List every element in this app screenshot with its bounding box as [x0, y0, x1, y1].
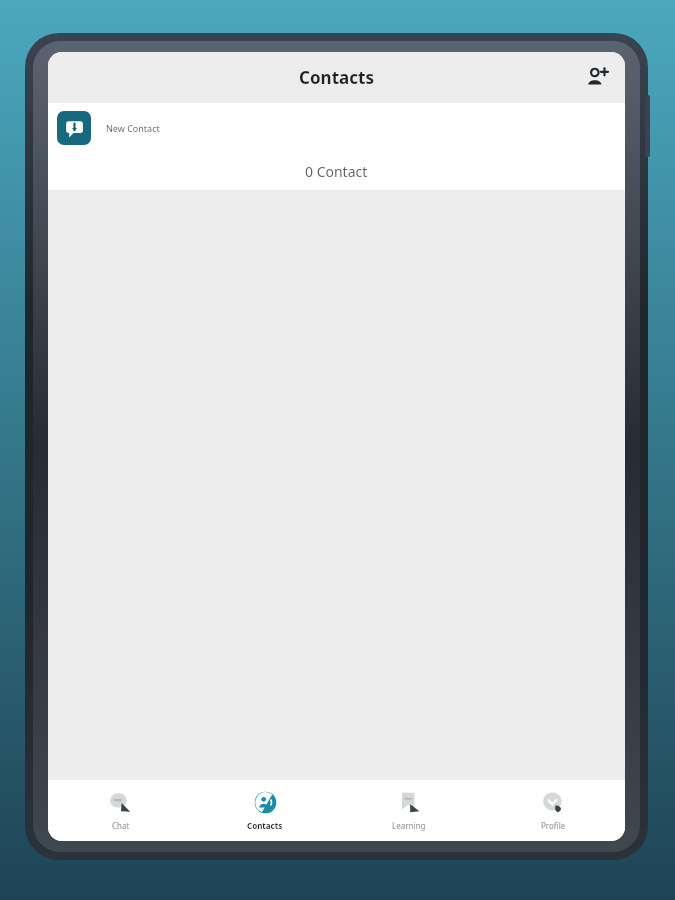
button[interactable]: Contacts — [193, 780, 337, 841]
button[interactable]: Profile — [481, 780, 625, 841]
staticText: Chat — [112, 820, 130, 831]
staticText: Contacts — [247, 820, 283, 831]
staticText: Profile — [541, 820, 566, 831]
button[interactable]: Add contact — [577, 58, 617, 98]
button[interactable]: Learning — [337, 780, 481, 841]
staticText: Contacts — [299, 66, 374, 89]
staticText: Learning — [392, 820, 426, 831]
button[interactable]: Chat — [48, 780, 193, 841]
staticText: 0 Contact — [305, 162, 368, 181]
staticText: New Contact — [106, 122, 160, 134]
button[interactable]: New Contact — [48, 103, 625, 153]
